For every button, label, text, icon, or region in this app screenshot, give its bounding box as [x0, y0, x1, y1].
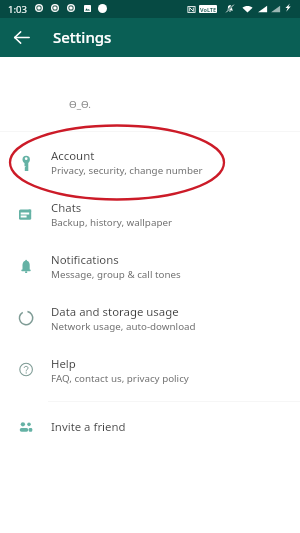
staticText: 1:03 [8, 3, 27, 16]
button[interactable]: Notifications [0, 239, 300, 291]
staticText: Chats [51, 200, 82, 216]
button[interactable]: Invite a friend [0, 406, 300, 458]
button[interactable]: Chats [0, 187, 300, 239]
staticText: Network usage, auto-download [51, 320, 196, 333]
staticText: FAQ, contact us, privacy policy [51, 372, 189, 385]
staticText: Ө_Ө. [69, 98, 91, 111]
staticText: Help [51, 356, 76, 372]
staticText: Account [51, 148, 95, 164]
staticText: Notifications [51, 252, 119, 268]
staticText: Message, group & call tones [51, 268, 181, 281]
button[interactable]: Ө_Ө. [0, 57, 300, 131]
button[interactable]: Account [0, 135, 300, 187]
staticText: Data and storage usage [51, 304, 179, 320]
staticText: Invite a friend [51, 419, 126, 435]
button[interactable]: Back [9, 25, 33, 49]
staticText: Backup, history, wallpaper [51, 216, 172, 229]
staticText: Settings [53, 27, 112, 47]
staticText: VoLTE [200, 6, 217, 13]
button[interactable]: Help [0, 343, 300, 395]
button[interactable]: Data and storage usage [0, 291, 300, 343]
staticText: Privacy, security, change number [51, 164, 203, 177]
